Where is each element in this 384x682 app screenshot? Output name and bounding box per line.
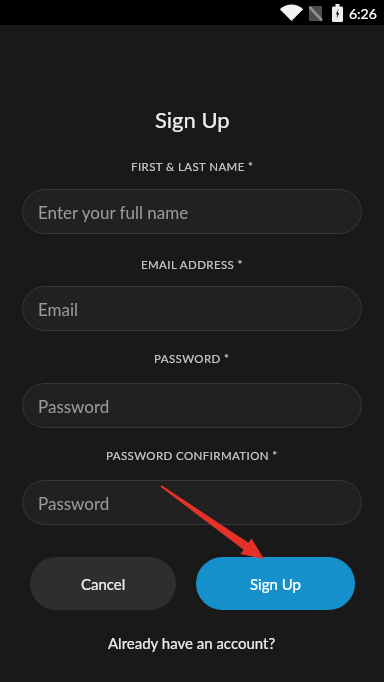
staticText: FIRST & LAST NAME * [131,160,254,174]
button[interactable]: Cancel [30,557,176,610]
button[interactable]: Password [22,383,362,428]
button[interactable]: Enter your full name [22,189,362,234]
staticText: Cancel [81,575,126,593]
staticText: Password [38,493,110,513]
staticText: Enter your full name [38,202,189,222]
staticText: EMAIL ADDRESS * [141,258,243,272]
button[interactable]: Password [22,480,362,525]
staticText: Sign Up [155,106,230,132]
staticText: PASSWORD CONFIRMATION * [106,449,278,463]
staticText: 6:26 [349,5,377,22]
staticText: Email [38,299,79,319]
staticText: Sign Up [250,575,301,593]
staticText: Password [38,396,110,416]
staticText: PASSWORD * [154,352,230,366]
button[interactable]: Already have an account? [108,634,276,652]
button[interactable]: Email [22,286,362,331]
button[interactable]: Sign Up [196,557,355,610]
